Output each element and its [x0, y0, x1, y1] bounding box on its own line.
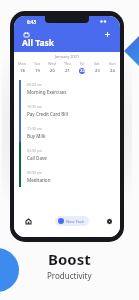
staticText: Fri	[80, 61, 85, 66]
staticText: Morning Exercises	[27, 89, 67, 95]
button[interactable]: Wed	[45, 61, 59, 74]
staticText: 6:43	[27, 19, 36, 25]
staticText: Buy Milk	[27, 133, 46, 139]
staticText: 02:00 pm	[27, 148, 43, 153]
button[interactable]: Thu	[60, 61, 74, 74]
staticText: Productivity	[47, 270, 92, 281]
button[interactable]: 05:00 pm	[14, 165, 120, 187]
staticText: January 2021	[55, 54, 80, 59]
button[interactable]: Settings	[104, 216, 115, 227]
button[interactable]: Mon	[15, 61, 29, 74]
staticText: 23	[95, 68, 100, 74]
button[interactable]: Tue	[30, 61, 44, 74]
staticText: Pay Credit Card Bill	[27, 111, 68, 117]
staticText: Wed	[48, 61, 56, 66]
staticText: 11:30 am	[27, 126, 43, 131]
staticText: 20	[50, 68, 55, 74]
staticText: Mon	[18, 61, 27, 66]
staticText: 09:00 am	[27, 82, 43, 87]
staticText: 22	[80, 68, 85, 74]
button[interactable]: 11:30 am	[14, 121, 120, 143]
staticText: All Task	[22, 37, 55, 49]
button[interactable]: New Task	[55, 216, 89, 226]
staticText: 21	[65, 68, 70, 74]
button[interactable]: Sat	[90, 61, 104, 74]
staticText: Boost	[48, 249, 91, 269]
staticText: 10:30 am	[27, 104, 43, 109]
staticText: Meditation	[27, 177, 51, 183]
button[interactable]: 02:00 pm	[14, 143, 120, 165]
staticText: Sun	[109, 61, 116, 66]
staticText: 19	[35, 68, 40, 74]
button[interactable]: Add task	[104, 31, 111, 38]
button[interactable]: Home	[23, 216, 34, 227]
staticText: Tue	[34, 61, 41, 66]
button[interactable]: Calendar	[23, 31, 30, 38]
staticText: 05:00 pm	[27, 170, 43, 175]
staticText: 18	[20, 68, 25, 74]
button[interactable]: 09:00 am	[14, 77, 120, 99]
button[interactable]: 10:30 am	[14, 99, 120, 121]
staticText: Call Dave	[27, 155, 47, 161]
staticText: 24	[110, 68, 115, 74]
staticText: Sat	[94, 61, 100, 66]
staticText: New Task	[66, 219, 84, 224]
button[interactable]: Sun	[105, 61, 119, 74]
staticText: Thu	[64, 61, 71, 66]
button[interactable]: Fri	[75, 61, 89, 74]
